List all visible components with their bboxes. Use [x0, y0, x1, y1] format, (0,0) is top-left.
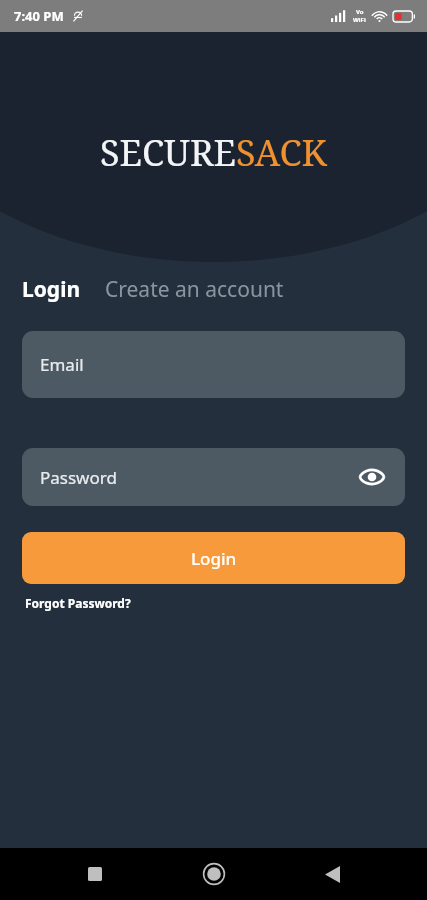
button[interactable]: Forgot Password?: [25, 595, 131, 611]
button[interactable]: Password: [22, 448, 405, 506]
button[interactable]: Home: [191, 851, 237, 897]
staticText: Create an account: [105, 275, 284, 304]
staticText: Email: [40, 353, 84, 376]
button[interactable]: Recent apps: [72, 851, 118, 897]
staticText: 7:40 PM: [14, 7, 64, 25]
staticText: Forgot Password?: [25, 595, 131, 611]
staticText: SECURESACK: [100, 128, 327, 177]
staticText: Login: [22, 275, 81, 304]
button[interactable]: Back: [309, 851, 355, 897]
button[interactable]: Create an account: [105, 275, 284, 304]
button[interactable]: Login: [22, 532, 405, 584]
button[interactable]: Show password: [355, 460, 389, 494]
button[interactable]: Email: [22, 331, 405, 398]
staticText: Password: [40, 466, 117, 489]
staticText: Vo: [356, 8, 364, 16]
button[interactable]: Login: [22, 275, 81, 304]
staticText: WiFi: [353, 16, 366, 24]
staticText: Login: [191, 547, 237, 570]
